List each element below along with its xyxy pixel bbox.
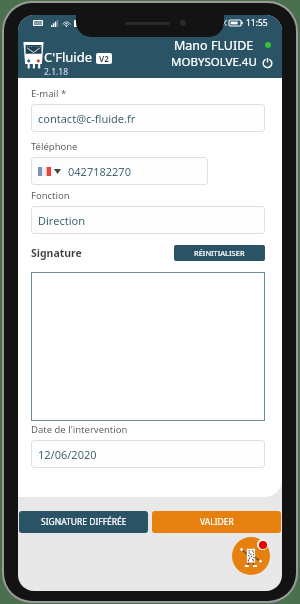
staticText: E-mail * xyxy=(31,87,67,100)
staticText: MOBYSOLVE.4U xyxy=(171,54,257,70)
button[interactable]: VALIDER xyxy=(152,511,281,533)
staticText: 11:55 xyxy=(246,17,268,29)
staticText: C'Fluide xyxy=(44,48,92,66)
staticText: Direction xyxy=(38,213,85,228)
staticText: Téléphone xyxy=(31,140,78,153)
staticText: RÉINITIALISER xyxy=(194,248,245,258)
staticText: Mano FLUIDE xyxy=(174,37,254,53)
staticText: contact@c-fluide.fr xyxy=(38,111,136,126)
staticText: 0427182270 xyxy=(68,164,131,179)
button[interactable]: Signature pad xyxy=(31,272,265,421)
button[interactable]: Direction xyxy=(31,206,265,234)
button[interactable]: contact@c-fluide.fr xyxy=(31,104,265,132)
button[interactable]: 0427182270 xyxy=(31,157,208,185)
button[interactable]: RÉINITIALISER xyxy=(174,245,265,261)
staticText: 12/06/2020 xyxy=(38,447,97,462)
button[interactable]: SIGNATURE DIFFÉRÉE xyxy=(19,511,148,533)
staticText: VALIDER xyxy=(200,516,234,528)
staticText: SIGNATURE DIFFÉRÉE xyxy=(41,516,127,528)
staticText: 2.1.18 xyxy=(44,66,69,78)
staticText: V2 xyxy=(99,53,109,64)
staticText: Signature xyxy=(31,246,82,260)
button[interactable]: Scan QR code xyxy=(232,537,270,575)
staticText: Date de l'intervention xyxy=(31,423,128,436)
button[interactable]: 12/06/2020 xyxy=(31,440,265,468)
staticText: Fonction xyxy=(31,189,70,202)
button[interactable]: Power off xyxy=(261,56,274,69)
